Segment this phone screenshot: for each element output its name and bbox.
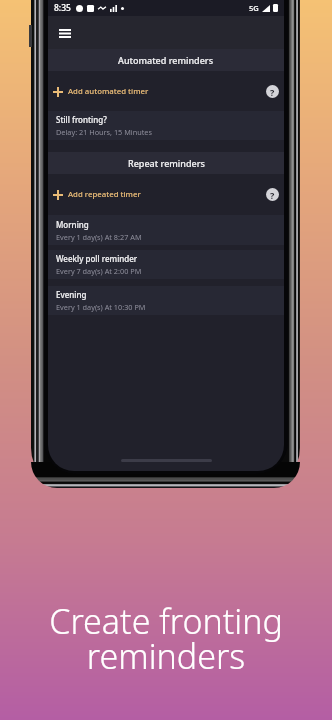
staticText: Weekly poll reminder [56, 253, 138, 264]
staticText: Still fronting? [56, 114, 107, 125]
staticText: Create fronting [0, 598, 332, 644]
staticText: 5G [249, 3, 259, 13]
staticText: Every 1 day(s) At 10:30 PM [56, 302, 146, 312]
button[interactable]: Help [266, 188, 279, 201]
button[interactable]: Add repeated timer [48, 174, 284, 215]
button[interactable]: Help [266, 85, 279, 98]
staticText: Automated reminders [118, 54, 214, 66]
button[interactable]: Weekly poll reminder [48, 250, 284, 279]
staticText: Every 7 day(s) At 2:00 PM [56, 266, 142, 276]
button[interactable]: Still fronting? [48, 111, 284, 140]
staticText: Evening [56, 289, 87, 300]
staticText: Repeat reminders [128, 157, 205, 169]
button[interactable]: Menu [52, 20, 78, 46]
staticText: Delay: 21 Hours, 15 Minutes [56, 127, 152, 137]
staticText: 8:35 [54, 2, 71, 14]
staticText: reminders [0, 633, 332, 679]
staticText: ? [270, 86, 275, 98]
button[interactable]: Morning [48, 215, 284, 245]
staticText: Every 1 day(s) At 8:27 AM [56, 232, 142, 242]
staticText: Morning [56, 219, 89, 230]
staticText: Add repeated timer [68, 189, 141, 200]
button[interactable]: Evening [48, 286, 284, 315]
staticText: ? [270, 189, 275, 201]
staticText: Add automated timer [68, 86, 149, 97]
button[interactable]: Add automated timer [48, 71, 284, 112]
